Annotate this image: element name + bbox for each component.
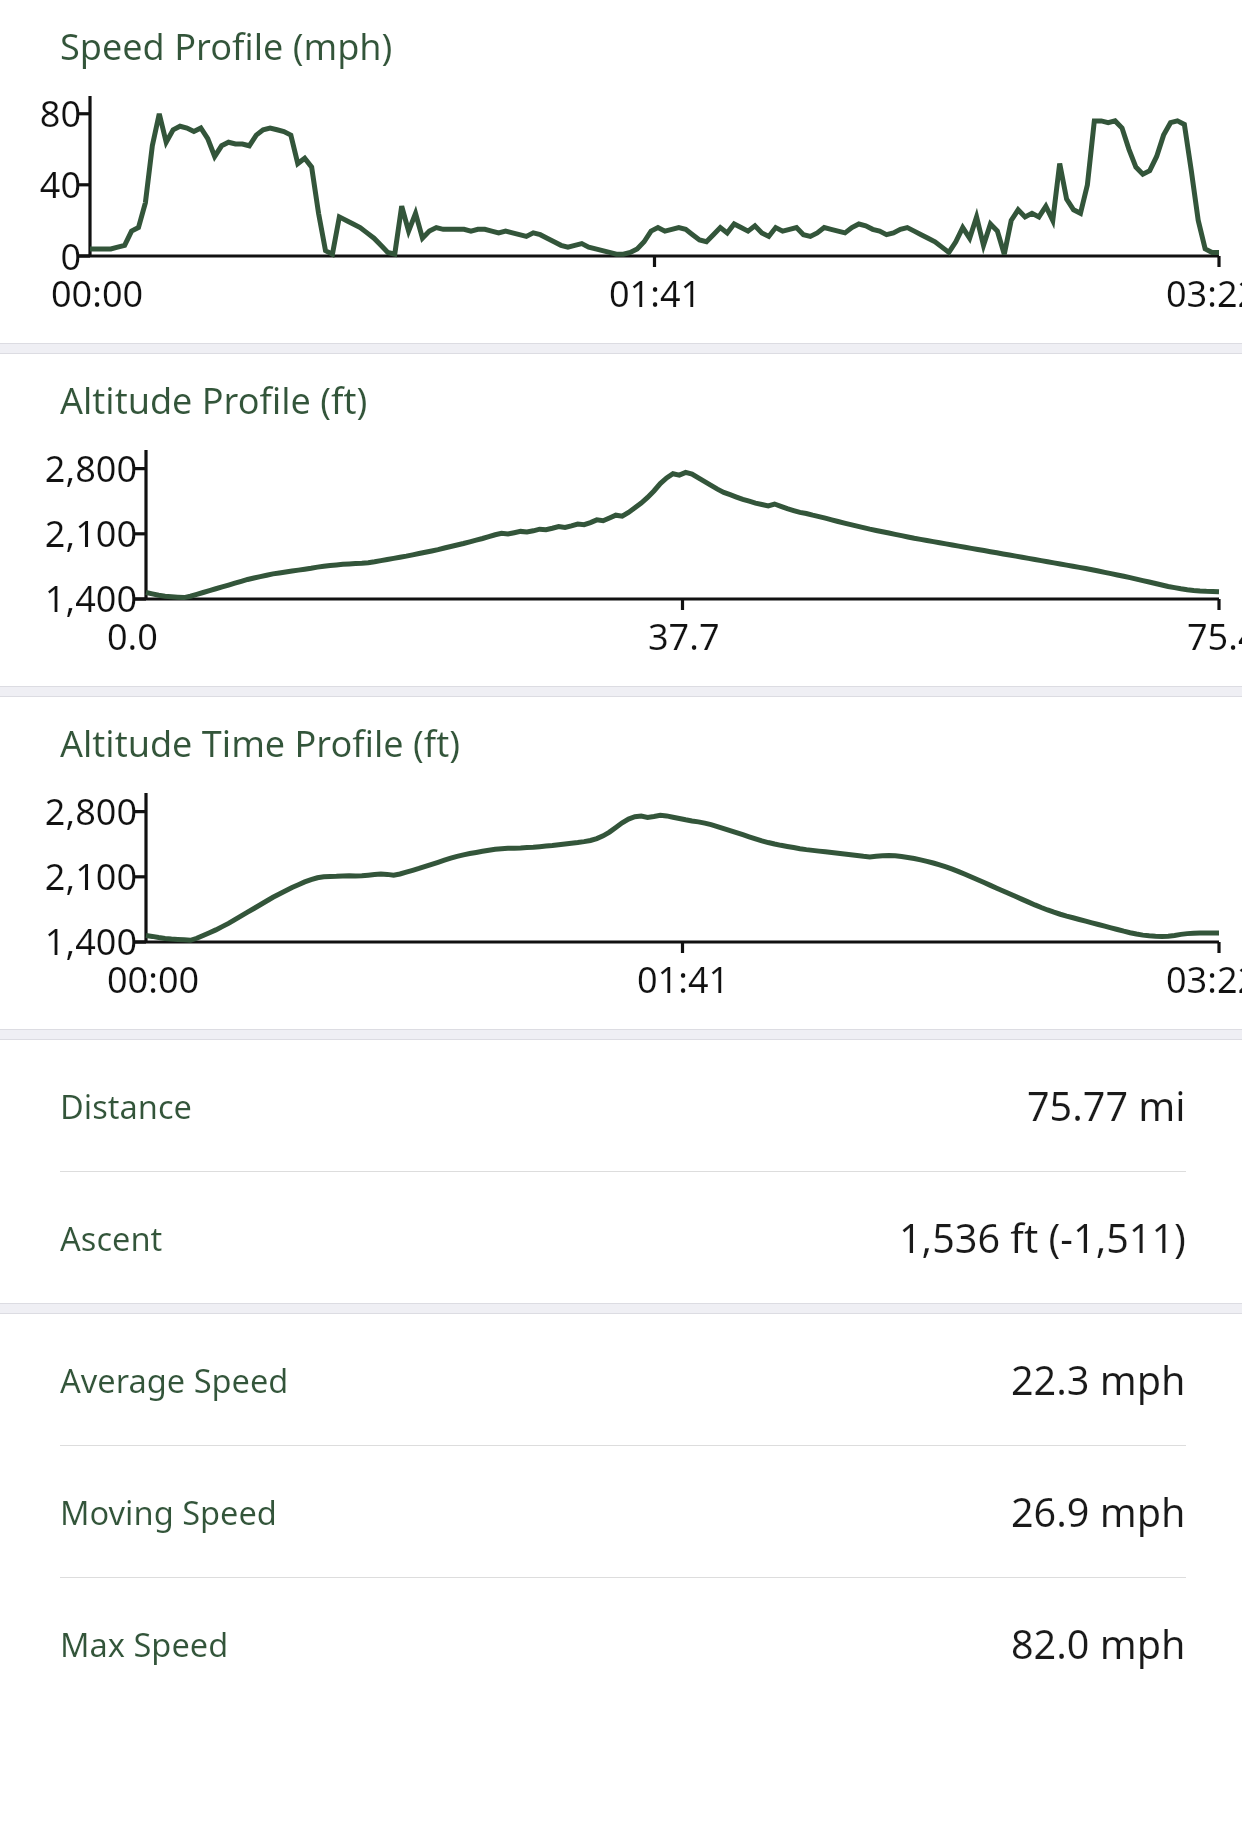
button[interactable]: Average Speed: [0, 1314, 1242, 1445]
staticText: 0.0: [107, 611, 158, 660]
staticText: Max Speed: [60, 1622, 229, 1666]
staticText: 1,400: [16, 573, 137, 622]
staticText: 01:41: [637, 954, 730, 1003]
staticText: 26.9 mph: [1011, 1485, 1186, 1539]
staticText: 22.3 mph: [1011, 1353, 1186, 1407]
staticText: Average Speed: [60, 1358, 289, 1402]
staticText: 00:00: [107, 954, 200, 1003]
staticText: 0: [16, 231, 81, 280]
staticText: 75.77 mi: [1027, 1079, 1186, 1133]
button[interactable]: Max Speed: [0, 1578, 1242, 1709]
button[interactable]: Distance: [0, 1040, 1242, 1171]
staticText: 1,536 ft (-1,511): [899, 1211, 1186, 1265]
staticText: Ascent: [60, 1216, 163, 1260]
staticText: 2,100: [16, 508, 137, 557]
staticText: Distance: [60, 1084, 192, 1128]
button[interactable]: Ascent: [0, 1172, 1242, 1303]
staticText: 80: [16, 88, 81, 137]
staticText: Altitude Time Profile (ft): [60, 718, 461, 767]
staticText: 37.7: [648, 611, 720, 660]
staticText: 2,800: [16, 443, 137, 492]
staticText: 40: [16, 159, 81, 208]
staticText: 01:41: [609, 268, 702, 317]
staticText: 75.4: [1187, 611, 1242, 660]
staticText: Speed Profile (mph): [60, 21, 393, 70]
button[interactable]: Moving Speed: [0, 1446, 1242, 1577]
staticText: Altitude Profile (ft): [60, 375, 368, 424]
staticText: 2,100: [16, 851, 137, 900]
staticText: 82.0 mph: [1011, 1617, 1186, 1671]
staticText: 1,400: [16, 916, 137, 965]
staticText: Moving Speed: [60, 1490, 277, 1534]
staticText: 2,800: [16, 786, 137, 835]
staticText: 03:22: [1166, 268, 1242, 317]
staticText: 00:00: [51, 268, 144, 317]
staticText: 03:22: [1166, 954, 1242, 1003]
